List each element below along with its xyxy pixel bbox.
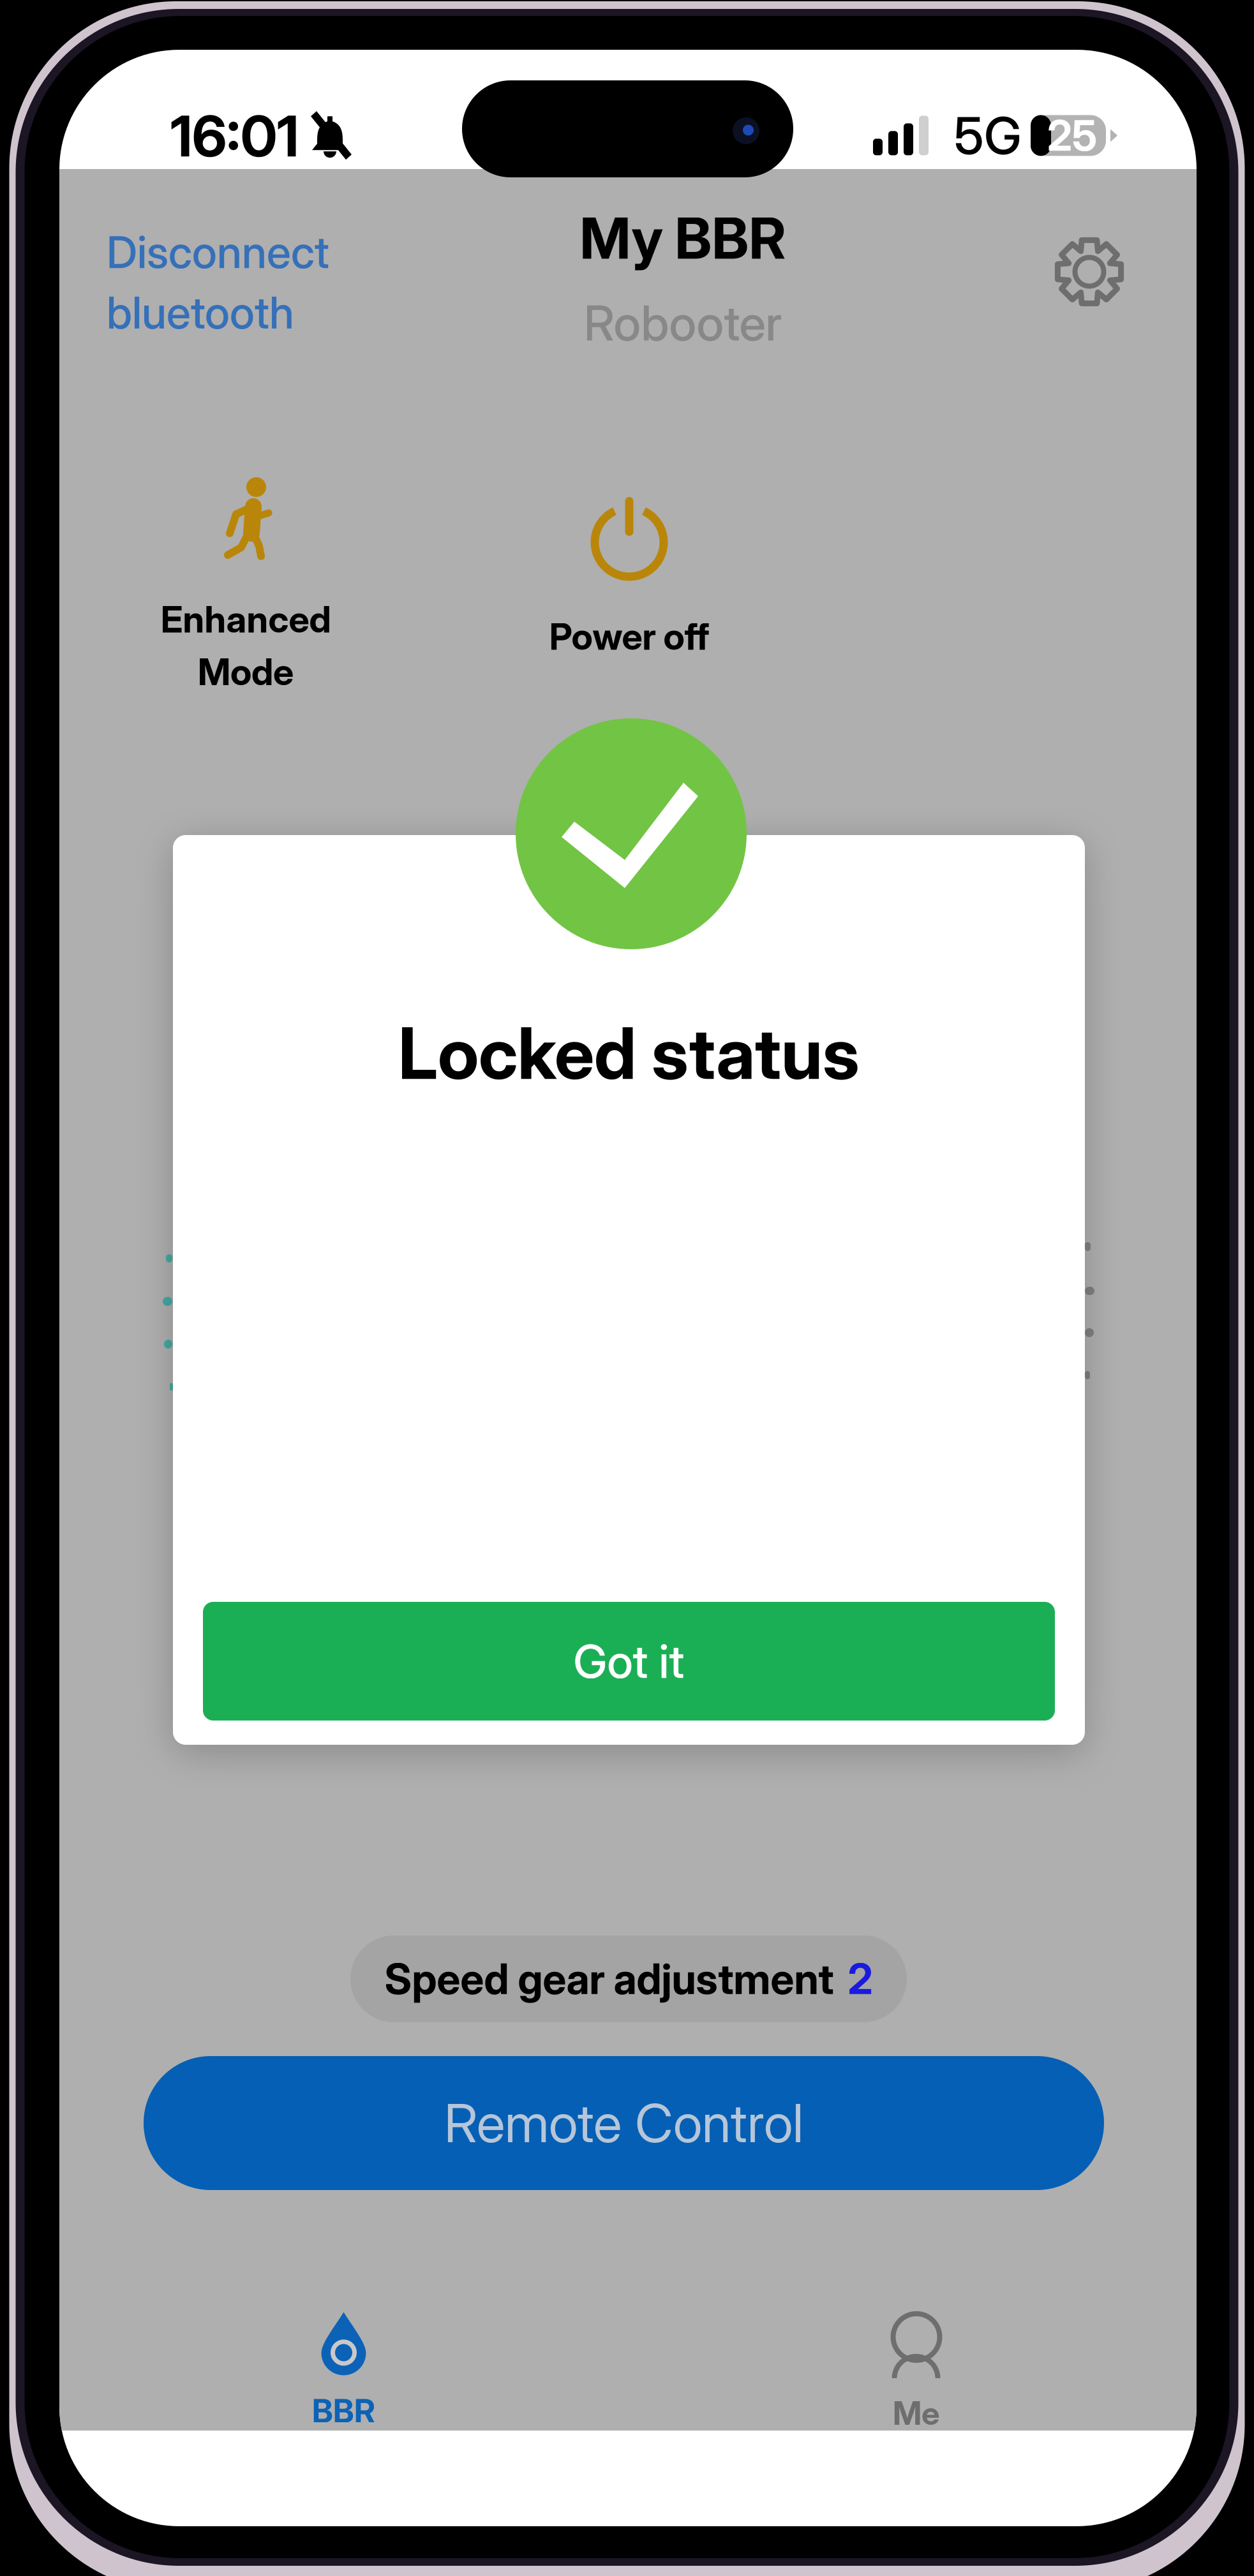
staticText: Speed gear adjustment	[384, 1954, 834, 2004]
button[interactable]: BBR	[59, 2304, 628, 2438]
staticText: My BBR	[580, 204, 786, 272]
staticText: Enhanced	[160, 597, 331, 641]
staticText: Disconnect	[107, 225, 329, 279]
button[interactable]: Me	[632, 2306, 1200, 2440]
button[interactable]: Disconnect	[103, 221, 333, 343]
staticText: bluetooth	[107, 286, 294, 339]
staticText: BBR	[312, 2391, 375, 2430]
staticText: 5G	[954, 105, 1022, 166]
staticText: Robooter	[584, 293, 782, 352]
staticText: 2	[848, 1954, 873, 2004]
button[interactable]: Settings	[1054, 236, 1125, 307]
staticText: 25	[1047, 110, 1097, 161]
button[interactable]: Power off	[495, 497, 763, 659]
staticText: Me	[893, 2393, 939, 2433]
button[interactable]: Speed gear adjustment	[350, 1936, 907, 2022]
staticText: Mode	[198, 650, 294, 694]
button[interactable]: Remote Control	[144, 2056, 1104, 2190]
staticText: Locked status	[398, 1010, 860, 1096]
button[interactable]: Got it	[203, 1602, 1055, 1721]
staticText: Got it	[573, 1633, 684, 1689]
staticText: Power off	[549, 614, 709, 659]
staticText: 16:01	[170, 102, 299, 170]
staticText: Remote Control	[444, 2091, 803, 2155]
button[interactable]: Enhanced	[112, 477, 380, 694]
